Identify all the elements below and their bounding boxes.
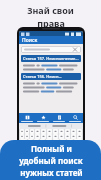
staticText: Полный и [31, 143, 72, 154]
button[interactable] [65, 129, 70, 134]
button[interactable] [77, 129, 82, 134]
button[interactable]: Статья 157. Неисполнение... [21, 55, 81, 71]
button[interactable] [25, 129, 29, 134]
button[interactable] [25, 134, 29, 139]
staticText: Поиск [22, 37, 38, 44]
button[interactable] [47, 134, 52, 139]
button[interactable] [28, 139, 33, 144]
button[interactable]: Статья 156. Неисп... [21, 73, 81, 93]
button[interactable] [35, 134, 40, 139]
button[interactable] [21, 46, 81, 53]
button[interactable]: Справочник [19, 113, 35, 123]
button[interactable] [71, 129, 76, 134]
staticText: права [37, 17, 65, 29]
button[interactable] [60, 139, 66, 144]
button[interactable] [35, 129, 40, 134]
button[interactable] [59, 129, 64, 134]
button[interactable] [53, 139, 59, 144]
button[interactable]: Документы [51, 113, 67, 123]
button[interactable]: Поиск [67, 113, 83, 123]
button[interactable] [30, 129, 34, 134]
staticText: нужных статей [20, 167, 83, 178]
button[interactable] [40, 139, 45, 144]
staticText: Статья 157. Неисполнение... [23, 56, 79, 61]
button[interactable] [34, 139, 39, 144]
button[interactable] [41, 134, 46, 139]
staticText: Знай свои [27, 4, 74, 16]
staticText: Статья 156. Неисп... [23, 74, 62, 79]
button[interactable]: Избранное [35, 113, 51, 123]
button[interactable] [67, 139, 73, 144]
button[interactable] [65, 144, 72, 149]
button[interactable] [47, 129, 52, 134]
button[interactable] [53, 134, 58, 139]
button[interactable] [39, 144, 64, 149]
button[interactable]: Полный и [0, 140, 101, 180]
button[interactable] [65, 134, 70, 139]
button[interactable] [31, 144, 38, 149]
button[interactable]: Поиск [19, 36, 83, 44]
button[interactable] [30, 134, 34, 139]
button[interactable] [20, 129, 24, 134]
button[interactable] [53, 129, 58, 134]
button[interactable] [71, 134, 76, 139]
button[interactable] [77, 134, 82, 139]
button[interactable] [41, 129, 46, 134]
button[interactable] [20, 134, 24, 139]
button[interactable] [59, 134, 64, 139]
staticText: удобный поиск [19, 155, 83, 166]
button[interactable] [74, 139, 82, 144]
button[interactable] [20, 139, 27, 144]
button[interactable] [46, 139, 52, 144]
